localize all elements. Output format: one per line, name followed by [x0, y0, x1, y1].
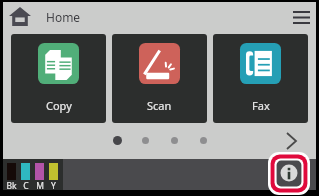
- button[interactable]: Page indicator: [113, 136, 122, 145]
- staticText: Bk: [6, 180, 17, 190]
- button[interactable]: Fax: [213, 34, 308, 123]
- staticText: Fax: [252, 98, 270, 113]
- staticText: M: [36, 180, 44, 190]
- staticText: Y: [51, 180, 56, 190]
- button[interactable]: Copy: [11, 34, 106, 123]
- staticText: Home: [46, 9, 81, 25]
- button[interactable]: Next page: [279, 129, 303, 153]
- button[interactable]: Page indicator: [142, 137, 149, 144]
- button[interactable]: Page indicator: [171, 137, 178, 144]
- staticText: Scan: [147, 98, 172, 113]
- staticText: C: [23, 180, 29, 190]
- button[interactable]: Information: [268, 152, 310, 195]
- staticText: Copy: [46, 98, 72, 113]
- button[interactable]: Home: [9, 7, 31, 26]
- button[interactable]: Scan: [112, 34, 207, 123]
- button[interactable]: Page indicator: [200, 137, 207, 144]
- button[interactable]: Menu: [287, 3, 315, 31]
